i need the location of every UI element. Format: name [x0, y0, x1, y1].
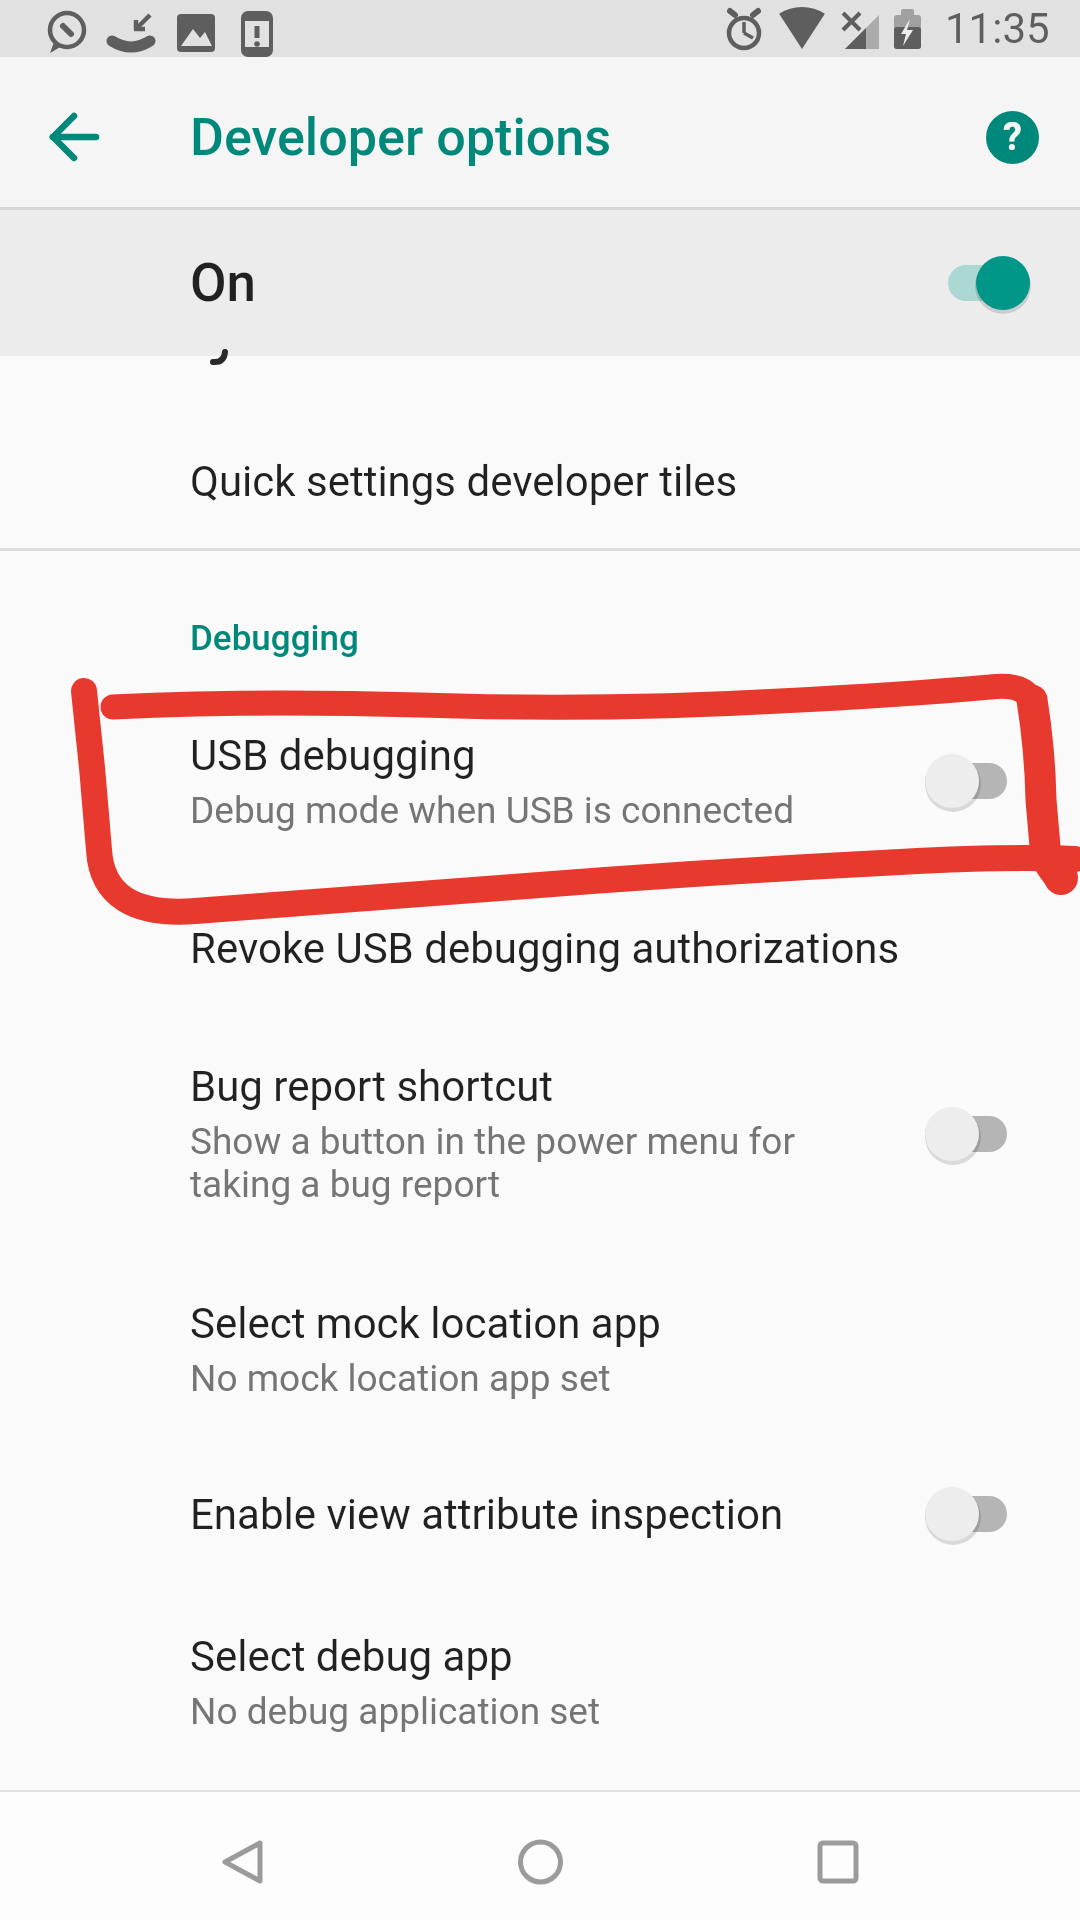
button[interactable] — [185, 1799, 300, 1914]
staticText: Revoke USB debugging authorizations — [190, 924, 900, 973]
button[interactable]: ? — [986, 111, 1039, 164]
button[interactable]: Revoke USB debugging authorizations — [0, 883, 1080, 1013]
staticText: No debug application set — [190, 1690, 601, 1733]
staticText: Quick settings developer tiles — [190, 457, 738, 506]
button[interactable] — [925, 752, 1030, 810]
button[interactable]: USB debugging — [0, 704, 1080, 858]
staticText: Developer options — [190, 107, 612, 168]
staticText: USB debugging — [190, 731, 476, 780]
staticText: ? — [1003, 115, 1022, 160]
staticText: No mock location app set — [190, 1357, 611, 1400]
staticText: Select mock location app — [190, 1299, 661, 1348]
button[interactable] — [483, 1799, 598, 1914]
button[interactable]: Enable view attribute inspection — [0, 1449, 1080, 1579]
button[interactable] — [925, 254, 1030, 312]
staticText: Enable view attribute inspection — [190, 1490, 784, 1539]
button[interactable] — [925, 1485, 1030, 1543]
button[interactable] — [925, 1105, 1030, 1163]
button[interactable] — [780, 1799, 895, 1914]
button[interactable]: Quick settings developer tiles — [0, 416, 1080, 546]
staticText: taking a bug report — [190, 1163, 501, 1206]
button[interactable]: Bug report shortcut — [0, 1039, 1080, 1229]
button[interactable]: On — [0, 210, 1080, 356]
button[interactable]: Select debug app — [0, 1592, 1080, 1772]
button[interactable] — [30, 92, 120, 182]
staticText: Select debug app — [190, 1632, 513, 1681]
staticText: 11:35 — [945, 4, 1050, 53]
staticText: On — [190, 252, 257, 314]
button[interactable]: Select mock location app — [0, 1259, 1080, 1439]
staticText: Show a button in the power menu for — [190, 1120, 795, 1163]
staticText: Bug report shortcut — [190, 1062, 554, 1111]
staticText: Debug mode when USB is connected — [190, 789, 795, 832]
staticText: Debugging — [190, 618, 359, 659]
